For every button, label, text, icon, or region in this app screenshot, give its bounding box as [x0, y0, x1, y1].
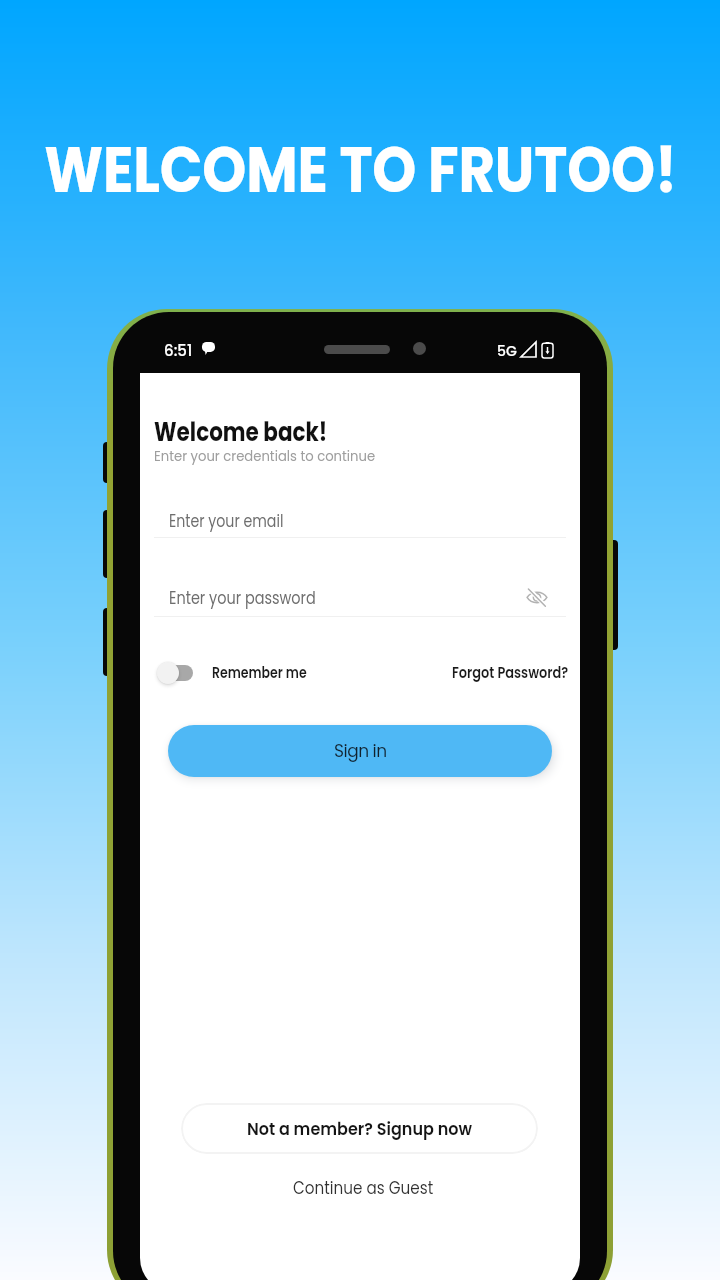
button[interactable]: Forgot Password?	[452, 658, 580, 686]
button[interactable]: Not a member? Signup now	[181, 1103, 538, 1154]
staticText: Not a member? Signup now	[247, 1116, 472, 1141]
staticText: 6:51	[164, 340, 193, 361]
staticText: Continue as Guest	[293, 1175, 433, 1200]
button[interactable]: Enter your email	[154, 493, 566, 541]
staticText: Enter your credentials to continue	[154, 445, 375, 466]
staticText: WELCOME TO FRUTOO!	[44, 126, 677, 214]
button[interactable]: Enter your password	[154, 571, 566, 619]
staticText: Enter your email	[169, 509, 284, 533]
staticText: Enter your password	[169, 586, 316, 610]
staticText: Sign in	[334, 739, 387, 763]
staticText: 5G	[497, 341, 517, 361]
staticText: Forgot Password?	[452, 662, 568, 683]
button[interactable]: Remember me	[212, 658, 326, 686]
button[interactable]: Show password	[519, 579, 555, 615]
staticText: Remember me	[212, 662, 307, 683]
button[interactable]: Remember me	[152, 654, 208, 692]
button[interactable]: Sign in	[168, 725, 552, 777]
staticText: Welcome back!	[154, 414, 327, 450]
button[interactable]: Continue as Guest	[293, 1172, 459, 1202]
